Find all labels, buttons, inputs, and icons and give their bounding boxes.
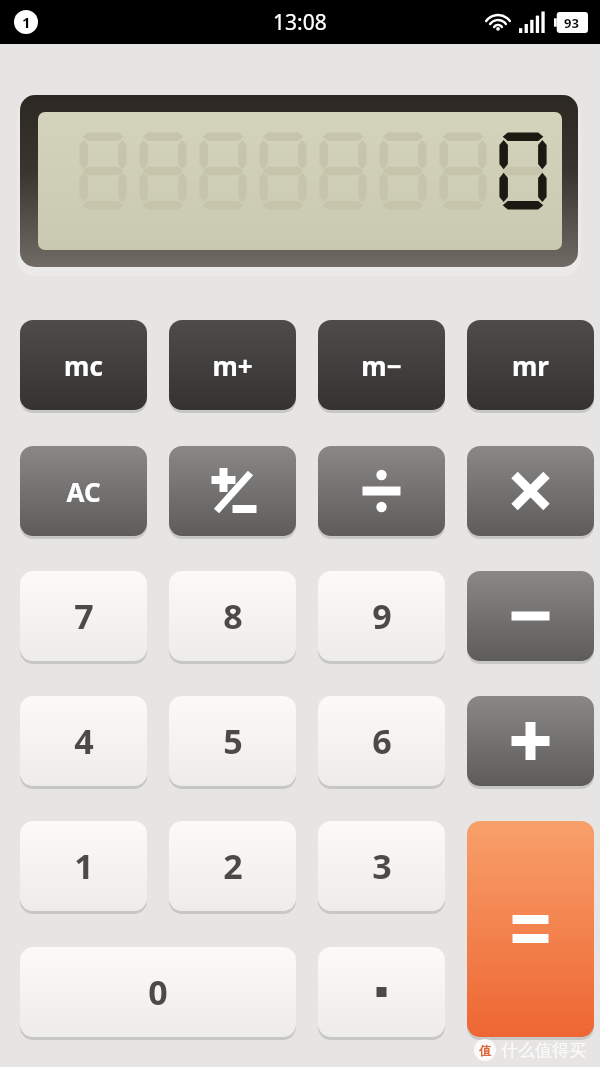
staticText: 93 — [564, 14, 579, 32]
button[interactable]: 4 — [20, 696, 147, 786]
button[interactable]: Plus minus — [169, 446, 296, 536]
button[interactable]: Minus — [467, 571, 594, 661]
staticText: 7 — [74, 593, 94, 639]
staticText: 什么值得买 — [501, 1040, 586, 1061]
button[interactable]: mr — [467, 320, 594, 410]
button[interactable]: 0 — [20, 947, 296, 1037]
staticText: AC — [66, 474, 101, 509]
button[interactable]: 3 — [318, 821, 445, 911]
button[interactable]: Decimal point — [318, 947, 445, 1037]
button[interactable]: Divide — [318, 446, 445, 536]
button[interactable]: Plus — [467, 696, 594, 786]
button[interactable]: Multiply — [467, 446, 594, 536]
staticText: 5 — [223, 718, 243, 764]
staticText: 13:08 — [273, 8, 327, 37]
staticText: 4 — [74, 718, 94, 764]
staticText: 0 — [148, 969, 168, 1015]
staticText: 1 — [22, 12, 31, 32]
button[interactable]: 8 — [169, 571, 296, 661]
button[interactable]: 5 — [169, 696, 296, 786]
button[interactable]: 1 — [20, 821, 147, 911]
button[interactable]: 2 — [169, 821, 296, 911]
button[interactable]: m+ — [169, 320, 296, 410]
button[interactable]: 9 — [318, 571, 445, 661]
staticText: 6 — [372, 718, 392, 764]
staticText: 值 — [479, 1043, 491, 1058]
staticText: mc — [64, 348, 103, 383]
button[interactable]: AC — [20, 446, 147, 536]
staticText: 1 — [74, 843, 94, 889]
button[interactable]: mc — [20, 320, 147, 410]
staticText: 9 — [372, 593, 392, 639]
staticText: mr — [512, 348, 549, 383]
staticText: 3 — [372, 843, 392, 889]
staticText: m+ — [212, 348, 253, 383]
staticText: m− — [361, 348, 402, 383]
staticText: 2 — [223, 843, 243, 889]
button[interactable]: 7 — [20, 571, 147, 661]
button[interactable]: m− — [318, 320, 445, 410]
button[interactable]: Equals — [467, 821, 594, 1037]
button[interactable]: 6 — [318, 696, 445, 786]
staticText: 8 — [223, 593, 243, 639]
